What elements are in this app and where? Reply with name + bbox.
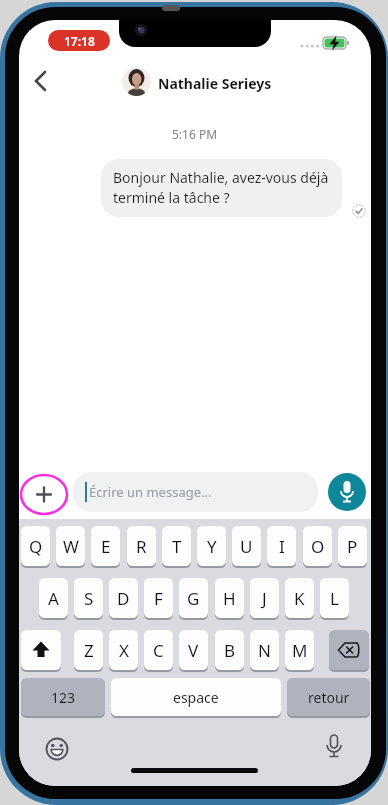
staticText: Y: [207, 535, 217, 558]
button[interactable]: [328, 473, 366, 511]
staticText: Nathalie Serieys: [158, 74, 272, 93]
staticText: 5:16 PM: [172, 126, 218, 142]
staticText: P: [347, 535, 358, 558]
staticText: A: [48, 587, 59, 610]
button[interactable]: [329, 630, 369, 670]
button[interactable]: E: [91, 526, 120, 566]
staticText: C: [153, 639, 164, 662]
button[interactable]: H: [215, 578, 244, 618]
staticText: M: [292, 639, 308, 662]
staticText: U: [240, 535, 253, 558]
staticText: espace: [173, 688, 219, 707]
button[interactable]: L: [320, 578, 349, 618]
staticText: Q: [29, 535, 43, 558]
staticText: N: [258, 639, 271, 662]
button[interactable]: S: [74, 578, 103, 618]
staticText: R: [136, 535, 147, 558]
staticText: W: [63, 535, 79, 558]
button[interactable]: [41, 733, 73, 765]
button[interactable]: G: [179, 578, 208, 618]
button[interactable]: M: [285, 630, 314, 670]
button[interactable]: U: [232, 526, 261, 566]
staticText: V: [188, 639, 199, 662]
button[interactable]: F: [144, 578, 173, 618]
staticText: X: [119, 639, 129, 662]
staticText: Bonjour Nathalie, avez-vous déjà terminé…: [113, 168, 329, 207]
staticText: I: [279, 535, 285, 558]
staticText: 17:18: [64, 33, 95, 49]
button[interactable]: V: [179, 630, 208, 670]
staticText: K: [294, 587, 305, 610]
button[interactable]: Q: [21, 526, 50, 566]
button[interactable]: O: [303, 526, 332, 566]
staticText: Z: [84, 639, 94, 662]
staticText: E: [101, 535, 111, 558]
button[interactable]: T: [162, 526, 191, 566]
button[interactable]: Z: [74, 630, 103, 670]
button[interactable]: 123: [21, 678, 105, 716]
staticText: J: [262, 587, 267, 610]
button[interactable]: R: [127, 526, 156, 566]
button[interactable]: retour: [287, 678, 370, 716]
button[interactable]: [21, 630, 61, 670]
button[interactable]: B: [215, 630, 244, 670]
button[interactable]: J: [250, 578, 279, 618]
button[interactable]: X: [109, 630, 138, 670]
staticText: Écrire un message...: [89, 483, 212, 501]
staticText: 123: [51, 688, 76, 707]
staticText: L: [330, 587, 339, 610]
staticText: D: [117, 587, 130, 610]
button[interactable]: [318, 732, 350, 764]
button[interactable]: P: [338, 526, 367, 566]
staticText: H: [223, 587, 236, 610]
button[interactable]: [31, 68, 51, 94]
staticText: T: [172, 535, 182, 558]
button[interactable]: W: [56, 526, 85, 566]
button[interactable]: Y: [197, 526, 226, 566]
staticText: G: [187, 587, 200, 610]
button[interactable]: espace: [111, 678, 281, 716]
button[interactable]: I: [267, 526, 296, 566]
staticText: F: [154, 587, 163, 610]
staticText: O: [311, 535, 325, 558]
button[interactable]: K: [285, 578, 314, 618]
button[interactable]: [21, 475, 67, 515]
button[interactable]: N: [250, 630, 279, 670]
staticText: S: [84, 587, 94, 610]
staticText: B: [224, 639, 236, 662]
button[interactable]: D: [109, 578, 138, 618]
button[interactable]: A: [39, 578, 68, 618]
button[interactable]: Écrire un message...: [73, 472, 318, 512]
staticText: retour: [308, 688, 350, 707]
button[interactable]: C: [144, 630, 173, 670]
